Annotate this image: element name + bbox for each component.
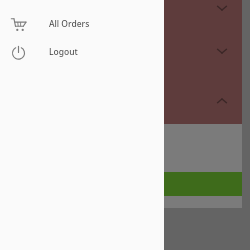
button[interactable]: Collapse third section — [210, 89, 234, 113]
button[interactable]: Expand first section — [210, 0, 234, 20]
button[interactable]: Expand second section — [210, 39, 234, 63]
button[interactable]: Logout — [0, 38, 164, 66]
staticText: All Orders — [49, 18, 90, 30]
button[interactable]: SEND PICTURE — [2, 172, 242, 196]
staticText: Logout — [49, 46, 78, 58]
button[interactable]: All Orders — [0, 10, 164, 38]
